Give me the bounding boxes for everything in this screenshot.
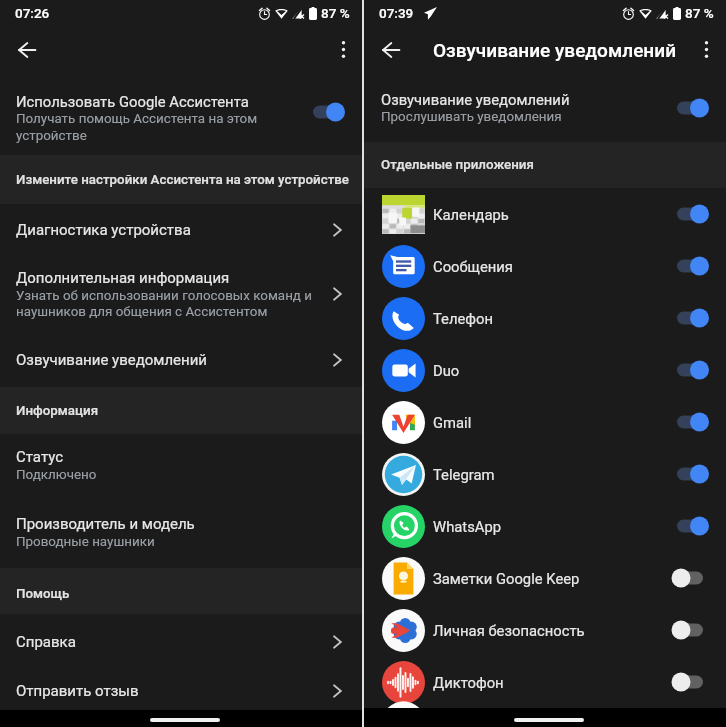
button[interactable]: Off [675, 667, 705, 697]
button[interactable]: On [675, 407, 705, 437]
staticText: Заметки Google Keep [433, 570, 675, 587]
staticText: Календарь [433, 206, 675, 223]
staticText: Сообщения [433, 258, 675, 275]
button[interactable]: On [675, 93, 705, 123]
button[interactable]: Озвучивание уведомлений [0, 332, 362, 387]
button[interactable]: More options [682, 31, 726, 68]
button[interactable]: On [675, 251, 705, 281]
button[interactable]: Диктофон [364, 656, 726, 708]
staticText: Озвучивание уведомлений [16, 351, 208, 369]
staticText: Проводные наушники [16, 534, 155, 550]
staticText: Диагностика устройства [16, 221, 191, 239]
staticText: Статус [16, 448, 64, 466]
button[interactable]: On [675, 303, 705, 333]
button[interactable]: Использовать Google Ассистента [0, 68, 362, 155]
staticText: Gmail [433, 414, 675, 431]
button[interactable]: Диагностика устройства [0, 204, 362, 256]
staticText: Телефон [433, 310, 675, 327]
staticText: Помощь [16, 586, 70, 602]
button[interactable]: More options [319, 31, 367, 68]
staticText: Использовать Google Ассистента [16, 93, 249, 110]
staticText: Duo [433, 362, 675, 379]
button[interactable]: Отправить отзыв [0, 667, 362, 717]
staticText: Telegram [433, 466, 675, 483]
staticText: Отправить отзыв [16, 682, 139, 700]
staticText: Личная безопасность [433, 622, 675, 639]
staticText: Справка [16, 633, 76, 651]
staticText: 07:39 [379, 5, 414, 21]
button[interactable]: Off [675, 563, 705, 593]
button[interactable]: Статус [0, 434, 362, 497]
staticText: Измените настройки Ассистента на этом ус… [16, 172, 350, 188]
staticText: 87 % [321, 5, 350, 21]
staticText: 87 % [685, 5, 714, 21]
staticText: Озвучивание уведомлений [381, 91, 570, 108]
button[interactable]: On [675, 355, 705, 385]
staticText: Информация [16, 403, 99, 419]
button[interactable]: Календарь [364, 188, 726, 240]
staticText: 07:26 [15, 5, 50, 21]
staticText: Производитель и модель [16, 515, 195, 533]
button[interactable]: Производитель и модель [0, 497, 362, 568]
staticText: Отдельные приложения [381, 157, 534, 173]
button[interactable]: On [675, 459, 705, 489]
button[interactable]: Back [3, 31, 51, 68]
button[interactable]: Duo [364, 344, 726, 396]
button[interactable]: Озвучивание уведомлений [364, 68, 726, 142]
button[interactable]: Off [675, 615, 705, 645]
button[interactable]: WhatsApp [364, 500, 726, 552]
staticText: Диктофон [433, 674, 675, 691]
button[interactable]: Gmail [364, 396, 726, 448]
button[interactable] [364, 708, 726, 727]
staticText: Узнать об использовании голосовых команд… [16, 288, 316, 320]
button[interactable]: Дополнительная информация [0, 256, 362, 332]
button[interactable]: Справка [0, 614, 362, 667]
staticText: Получать помощь Ассистента на этом устро… [16, 111, 301, 143]
staticText: Прослушивать уведомления [381, 109, 562, 125]
button[interactable]: Личная безопасность [364, 604, 726, 656]
button[interactable]: Сообщения [364, 240, 726, 292]
button[interactable]: On [311, 97, 341, 127]
staticText: Озвучивание уведомлений [433, 39, 677, 61]
staticText: Подключено [16, 467, 97, 483]
button[interactable]: On [675, 511, 705, 541]
button[interactable]: Телефон [364, 292, 726, 344]
staticText: Дополнительная информация [16, 269, 230, 287]
button[interactable]: Telegram [364, 448, 726, 500]
staticText: WhatsApp [433, 518, 675, 535]
button[interactable]: On [675, 199, 705, 229]
button[interactable]: Back [367, 31, 415, 68]
button[interactable]: Заметки Google Keep [364, 552, 726, 604]
